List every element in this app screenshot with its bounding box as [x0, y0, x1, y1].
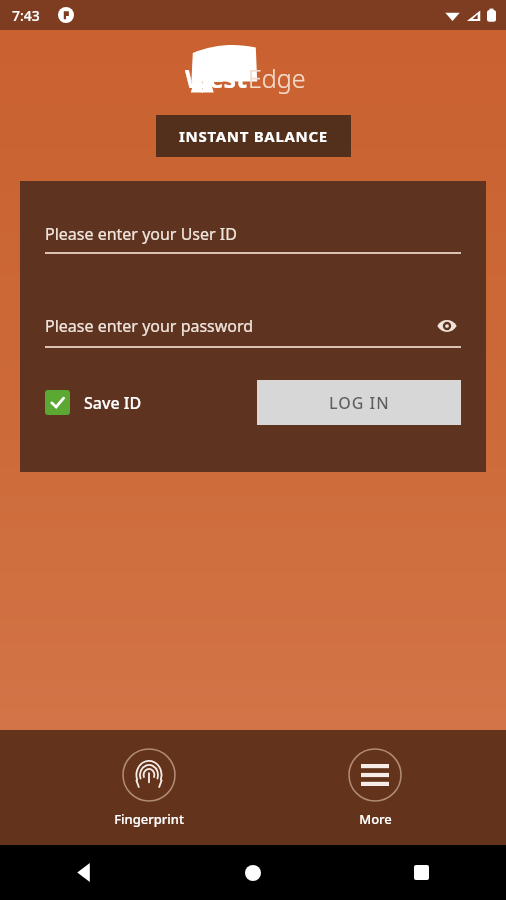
button[interactable]: Show password: [433, 312, 461, 340]
button[interactable]: More: [342, 744, 408, 832]
staticText: Save ID: [84, 392, 142, 414]
staticText: Edge: [248, 61, 306, 95]
staticText: 7:43: [12, 6, 40, 25]
button[interactable]: Back: [0, 845, 168, 900]
button[interactable]: Save ID: [45, 390, 142, 415]
button[interactable]: INSTANT BALANCE: [156, 115, 351, 157]
button[interactable]: Please enter your User ID: [45, 223, 461, 254]
staticText: Please enter your User ID: [45, 223, 237, 245]
staticText: INSTANT BALANCE: [179, 126, 328, 146]
button[interactable]: Please enter your password: [45, 312, 461, 340]
staticText: More: [359, 810, 392, 828]
staticText: Fingerprint: [114, 810, 184, 828]
button[interactable]: Home: [168, 845, 337, 900]
button[interactable]: Recent apps: [337, 845, 506, 900]
staticText: Please enter your password: [45, 315, 433, 337]
button[interactable]: LOG IN: [257, 380, 461, 425]
staticText: West: [185, 61, 248, 95]
button[interactable]: Fingerprint: [108, 744, 190, 832]
staticText: LOG IN: [329, 392, 390, 414]
